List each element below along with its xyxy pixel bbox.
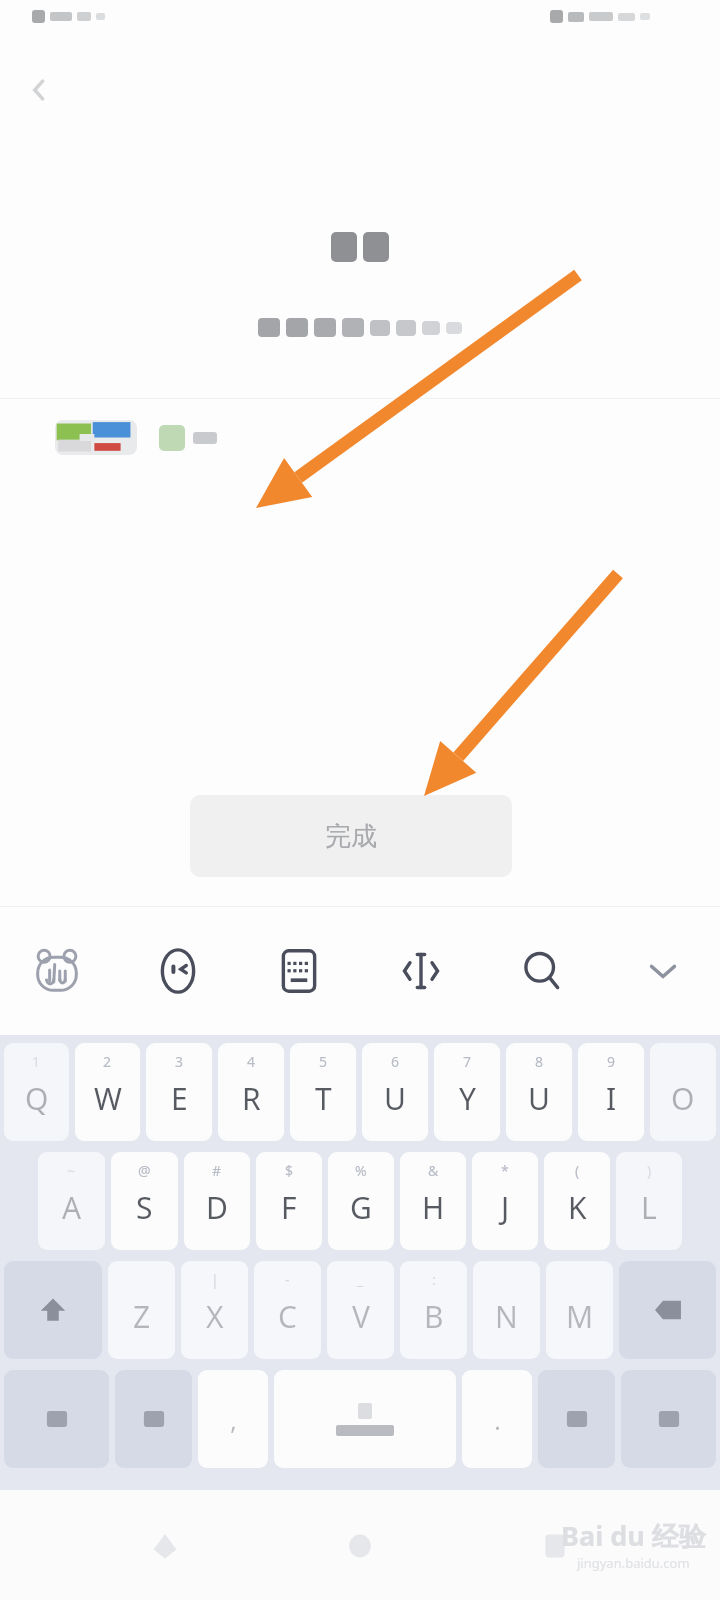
staticText: 9 <box>607 1052 616 1071</box>
staticText: 2 <box>103 1052 112 1071</box>
button[interactable]: Hide keyboard <box>632 940 694 1002</box>
button[interactable]: , <box>198 1370 268 1468</box>
staticText: 完成 <box>325 820 377 853</box>
staticText: , <box>230 1402 237 1437</box>
staticText: Bai du 经验 <box>561 1517 706 1554</box>
staticText: ~ <box>67 1161 76 1180</box>
button[interactable]: Z <box>108 1261 175 1359</box>
button[interactable]: @ <box>111 1152 178 1250</box>
staticText: % <box>355 1161 367 1180</box>
button[interactable]: 1 <box>4 1043 69 1141</box>
staticText: Y <box>459 1078 476 1119</box>
staticText: F <box>281 1187 297 1228</box>
button[interactable]: Backspace <box>619 1261 716 1359</box>
staticText: A <box>62 1187 82 1228</box>
button[interactable]: ( <box>544 1152 610 1250</box>
staticText: J <box>501 1187 510 1228</box>
button[interactable]: Search <box>511 940 573 1002</box>
button[interactable]: Baidu input <box>26 940 88 1002</box>
staticText: : <box>432 1270 436 1289</box>
button[interactable]: Shift <box>4 1261 102 1359</box>
button[interactable]: Edit text <box>390 940 452 1002</box>
staticText: # <box>212 1161 222 1180</box>
staticText: * <box>501 1161 509 1180</box>
staticText: V <box>352 1296 370 1337</box>
button[interactable] <box>55 420 137 455</box>
button[interactable]: ) <box>616 1152 682 1250</box>
staticText: R <box>242 1078 261 1119</box>
staticText: $ <box>285 1161 294 1180</box>
staticText: 5 <box>319 1052 328 1071</box>
staticText: L <box>641 1187 657 1228</box>
staticText: jingyan.baidu.com <box>577 1554 690 1572</box>
button[interactable]: - <box>254 1261 321 1359</box>
button[interactable]: $ <box>256 1152 322 1250</box>
staticText: X <box>206 1296 224 1337</box>
staticText: - <box>285 1270 290 1289</box>
staticText: 4 <box>247 1052 256 1071</box>
button[interactable]: 8 <box>506 1043 572 1141</box>
button[interactable]: 完成 <box>190 795 512 877</box>
staticText: Q <box>25 1078 49 1119</box>
staticText: U <box>384 1078 406 1119</box>
staticText: ( <box>575 1161 580 1180</box>
staticText: _ <box>357 1270 364 1289</box>
staticText: O <box>671 1078 695 1119</box>
button[interactable]: Switch language <box>115 1370 192 1468</box>
staticText: 7 <box>463 1052 472 1071</box>
staticText: 6 <box>391 1052 400 1071</box>
staticText: N <box>495 1296 518 1337</box>
button[interactable]: ~ <box>38 1152 105 1250</box>
staticText: & <box>428 1161 439 1180</box>
staticText: 3 <box>175 1052 184 1071</box>
button[interactable]: : <box>400 1261 467 1359</box>
button[interactable]: Enter <box>621 1370 716 1468</box>
button[interactable]: 5 <box>290 1043 356 1141</box>
staticText: W <box>94 1078 122 1119</box>
button[interactable]: 6 <box>362 1043 428 1141</box>
button[interactable]: Keyboard layout <box>268 940 330 1002</box>
button[interactable]: Emoji <box>147 940 209 1002</box>
button[interactable]: Symbols <box>4 1370 109 1468</box>
staticText: C <box>278 1296 297 1337</box>
button[interactable]: 2 <box>75 1043 140 1141</box>
button[interactable]: Recents <box>525 1516 585 1576</box>
staticText: B <box>424 1296 444 1337</box>
button[interactable]: 4 <box>218 1043 284 1141</box>
staticText: I <box>606 1078 617 1119</box>
staticText: G <box>350 1187 372 1228</box>
staticText: E <box>171 1078 188 1119</box>
staticText: U <box>528 1078 550 1119</box>
button[interactable]: Back <box>135 1516 195 1576</box>
button[interactable]: Space <box>274 1370 456 1468</box>
button[interactable]: % <box>328 1152 394 1250</box>
staticText: @ <box>138 1161 151 1180</box>
button[interactable]: 9 <box>578 1043 644 1141</box>
staticText: Z <box>133 1296 151 1337</box>
staticText: K <box>568 1187 587 1228</box>
button[interactable]: Options <box>538 1370 615 1468</box>
button[interactable]: O <box>650 1043 716 1141</box>
staticText: M <box>566 1296 594 1337</box>
button[interactable]: & <box>400 1152 466 1250</box>
staticText: S <box>136 1187 153 1228</box>
staticText: T <box>315 1078 332 1119</box>
button[interactable]: * <box>472 1152 538 1250</box>
button[interactable]: | <box>181 1261 248 1359</box>
staticText: D <box>206 1187 228 1228</box>
staticText: ) <box>647 1161 652 1180</box>
button[interactable]: Back <box>18 68 62 112</box>
staticText: | <box>211 1270 219 1289</box>
button[interactable]: Home <box>330 1516 390 1576</box>
button[interactable]: M <box>546 1261 613 1359</box>
button[interactable]: N <box>473 1261 540 1359</box>
button[interactable]: 7 <box>434 1043 500 1141</box>
staticText: 8 <box>535 1052 544 1071</box>
staticText: . <box>494 1402 501 1437</box>
staticText: 1 <box>32 1052 41 1071</box>
button[interactable]: 3 <box>146 1043 212 1141</box>
button[interactable]: _ <box>327 1261 394 1359</box>
button[interactable]: # <box>184 1152 250 1250</box>
button[interactable]: . <box>462 1370 532 1468</box>
staticText: H <box>422 1187 445 1228</box>
